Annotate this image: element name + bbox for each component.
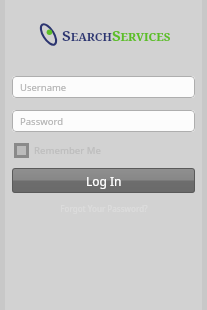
button[interactable]: Username — [12, 76, 195, 98]
button[interactable]: Log In — [12, 168, 195, 193]
staticText: Password — [20, 115, 63, 128]
staticText: SEARCHSERVICES — [62, 25, 171, 45]
staticText: Forgot Your Password? — [60, 203, 148, 214]
button[interactable]: Remember Me — [14, 143, 207, 158]
button[interactable]: Password — [12, 110, 195, 132]
staticText: Remember Me — [34, 144, 101, 157]
staticText: Log In — [86, 173, 122, 189]
staticText: Username — [20, 81, 67, 94]
